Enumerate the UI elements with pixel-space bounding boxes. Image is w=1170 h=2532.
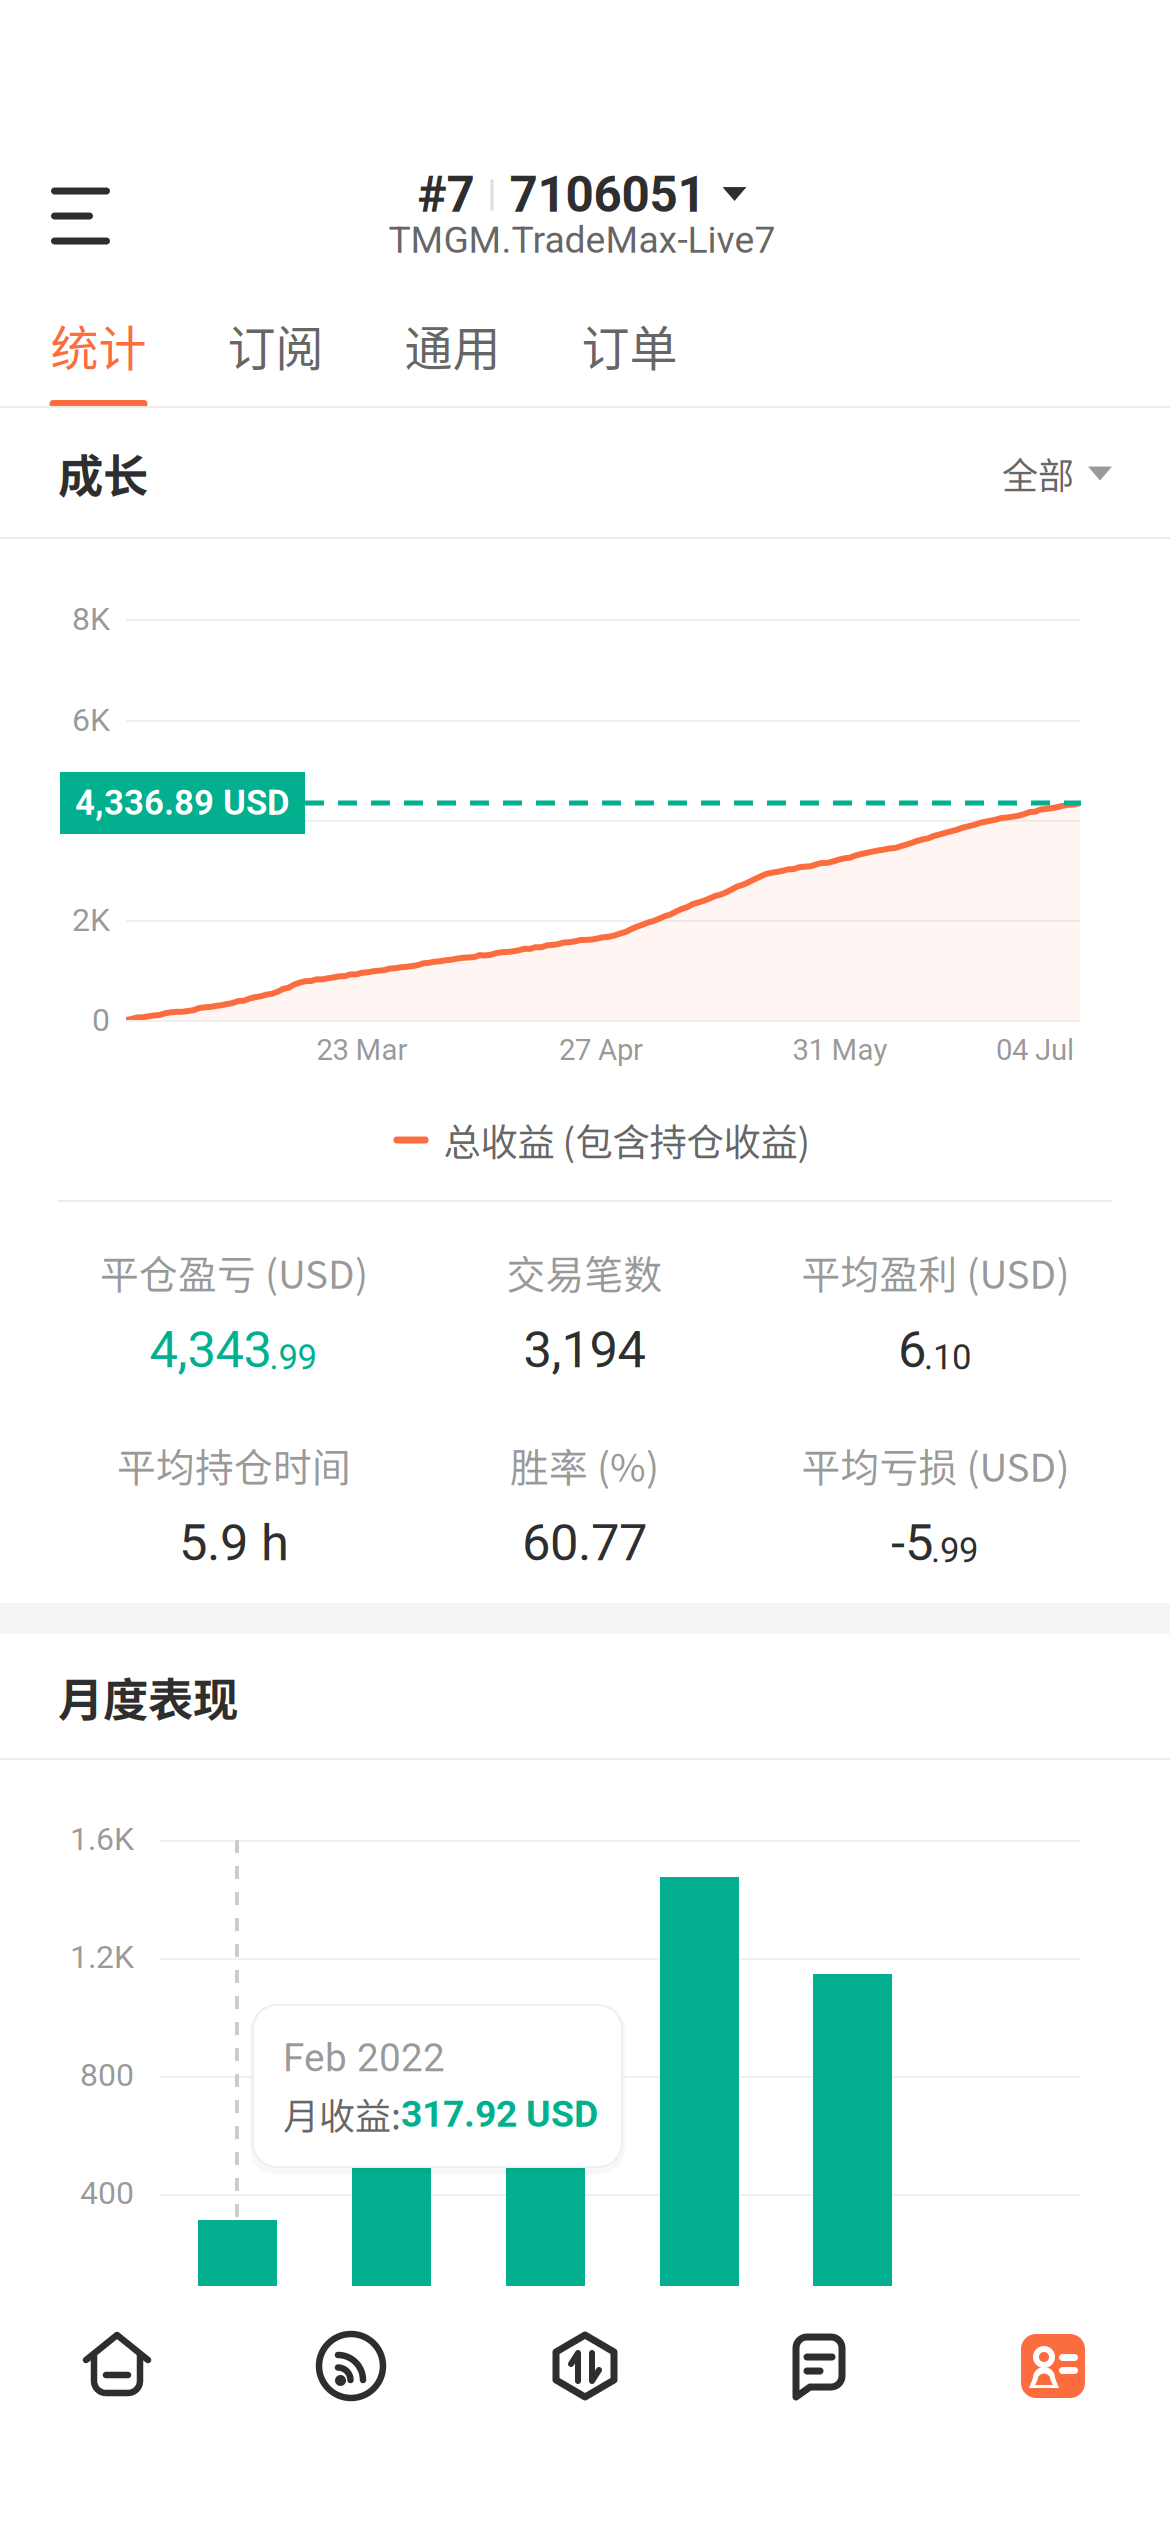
- staticText: 订单: [581, 310, 677, 380]
- staticText: 通用: [404, 310, 500, 380]
- staticText: 6K: [72, 701, 110, 739]
- staticText: 31 May: [792, 1033, 887, 1067]
- staticText: 6: [898, 1320, 926, 1380]
- button[interactable]: Home: [0, 2286, 234, 2532]
- staticText: 平仓盈亏 (USD): [100, 1244, 368, 1300]
- staticText: 平均持仓时间: [117, 1437, 351, 1493]
- staticText: 全部: [1002, 447, 1074, 499]
- button[interactable]: Profile: [936, 2286, 1170, 2532]
- button[interactable]: Messages: [702, 2286, 936, 2532]
- staticText: 1.2K: [70, 1938, 134, 1976]
- staticText: .99: [931, 1530, 978, 1571]
- staticText: 1.6K: [70, 1820, 134, 1858]
- staticText: 胜率 (%): [510, 1437, 659, 1493]
- staticText: 04 Jul: [996, 1033, 1074, 1067]
- staticText: 平均盈利 (USD): [801, 1244, 1069, 1300]
- staticText: 60.77: [522, 1513, 647, 1573]
- button[interactable]: 通用: [364, 290, 541, 408]
- staticText: 统计: [50, 310, 146, 380]
- staticText: Feb 2022: [283, 2035, 445, 2081]
- staticText: 0: [92, 1001, 110, 1039]
- button[interactable]: 统计: [10, 290, 187, 408]
- button[interactable]: Menu: [0, 151, 181, 281]
- button[interactable]: 订单: [541, 290, 718, 408]
- staticText: #7: [417, 166, 474, 224]
- staticText: 23 Mar: [316, 1033, 407, 1067]
- staticText: 4,343: [149, 1320, 271, 1380]
- staticText: 月度表现: [58, 1664, 238, 1730]
- staticText: -5: [891, 1513, 933, 1573]
- staticText: 成长: [58, 441, 148, 506]
- staticText: 月收益:: [283, 2088, 401, 2140]
- staticText: 800: [80, 2056, 134, 2094]
- staticText: 4,336.89 USD: [75, 783, 290, 823]
- staticText: 2K: [72, 901, 110, 939]
- staticText: 7106051: [509, 166, 705, 224]
- staticText: 5.9 h: [179, 1513, 289, 1573]
- button[interactable]: 全部: [1002, 427, 1112, 519]
- staticText: 27 Apr: [559, 1033, 643, 1067]
- staticText: 交易笔数: [506, 1244, 662, 1300]
- staticText: .99: [269, 1337, 316, 1378]
- button[interactable]: Trade: [468, 2286, 702, 2532]
- staticText: .10: [924, 1337, 971, 1378]
- button[interactable]: 订阅: [187, 290, 364, 408]
- staticText: 400: [80, 2174, 134, 2212]
- staticText: 平均亏损 (USD): [801, 1437, 1069, 1493]
- staticText: 3,194: [523, 1320, 645, 1380]
- staticText: 317.92 USD: [401, 2092, 598, 2136]
- staticText: TMGM.TradeMax-Live7: [388, 218, 775, 262]
- staticText: 订阅: [227, 310, 323, 380]
- button[interactable]: Signals: [234, 2286, 468, 2532]
- staticText: 8K: [72, 600, 110, 638]
- staticText: 总收益 (包含持仓收益): [443, 1113, 810, 1167]
